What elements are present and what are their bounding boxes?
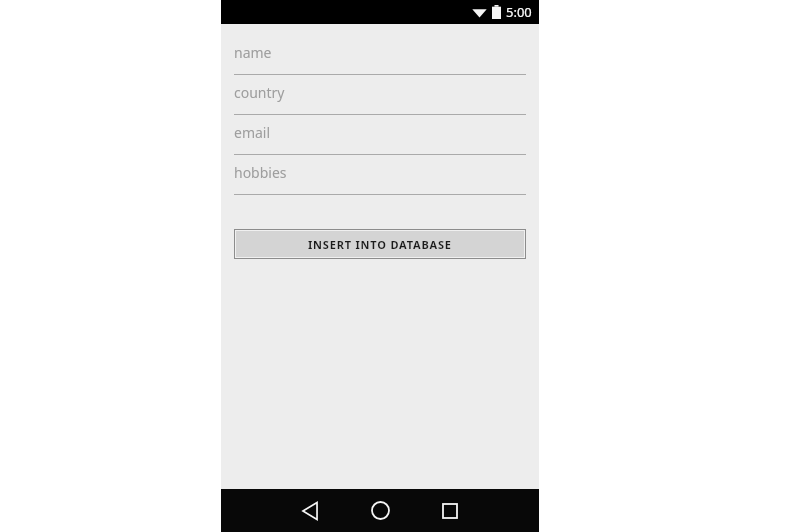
staticText: email (234, 123, 271, 142)
button[interactable]: name (234, 35, 526, 75)
staticText: hobbies (234, 163, 287, 182)
button[interactable]: country (234, 75, 526, 115)
button[interactable]: Home (351, 489, 409, 532)
staticText: INSERT INTO DATABASE (308, 237, 452, 252)
staticText: 5:00 (506, 3, 532, 21)
button[interactable]: email (234, 115, 526, 155)
button[interactable]: Recent apps (421, 489, 479, 532)
button[interactable]: hobbies (234, 155, 526, 195)
staticText: name (234, 43, 272, 62)
staticText: country (234, 83, 285, 102)
button[interactable]: INSERT INTO DATABASE (236, 231, 524, 257)
button[interactable]: Back (281, 489, 339, 532)
